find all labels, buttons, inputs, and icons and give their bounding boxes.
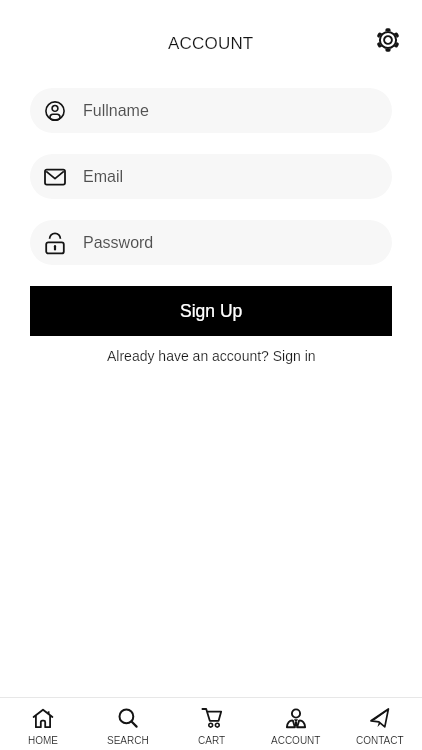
staticText: CART bbox=[198, 735, 226, 746]
button[interactable]: Sign Up bbox=[30, 286, 392, 336]
button[interactable]: Already have an account? Sign in bbox=[30, 348, 392, 364]
button[interactable]: CART bbox=[170, 698, 254, 750]
staticText: SEARCH bbox=[107, 735, 149, 746]
staticText: Sign Up bbox=[180, 301, 243, 321]
staticText: CONTACT bbox=[356, 735, 404, 746]
button[interactable] bbox=[368, 20, 408, 60]
staticText: Password bbox=[83, 234, 154, 252]
staticText: ACCOUNT bbox=[271, 735, 321, 746]
staticText: Already have an account? Sign in bbox=[107, 348, 316, 364]
staticText: Fullname bbox=[83, 102, 149, 120]
button[interactable]: SEARCH bbox=[85, 698, 170, 750]
button[interactable]: Email bbox=[30, 154, 392, 199]
button[interactable]: Password bbox=[30, 220, 392, 265]
button[interactable]: Fullname bbox=[30, 88, 392, 133]
staticText: ACCOUNT bbox=[168, 34, 254, 53]
button[interactable]: HOME bbox=[0, 698, 85, 750]
button[interactable]: ACCOUNT bbox=[254, 698, 338, 750]
button[interactable]: CONTACT bbox=[338, 698, 422, 750]
staticText: HOME bbox=[28, 735, 58, 746]
staticText: Email bbox=[83, 168, 124, 186]
